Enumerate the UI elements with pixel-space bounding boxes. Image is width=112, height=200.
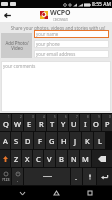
staticText: your email address (36, 51, 76, 57)
staticText: 1 (8, 115, 10, 119)
staticText: WCPO (50, 8, 71, 18)
button[interactable]: N (68, 150, 79, 167)
button[interactable]: E (24, 114, 35, 131)
staticText: Z (14, 154, 19, 164)
button[interactable]: R (36, 114, 46, 131)
button[interactable]: ?123 (0, 168, 11, 185)
staticText: H (61, 136, 67, 146)
staticText: your comments (3, 63, 36, 69)
button[interactable]: . (71, 168, 82, 185)
staticText: 7 (76, 115, 78, 119)
button[interactable]: Add Photo/ Video (1, 33, 32, 58)
staticText: . (75, 172, 78, 182)
button[interactable]: Back (0, 8, 14, 22)
staticText: 3 (32, 115, 34, 119)
staticText: V (47, 154, 52, 164)
button[interactable]: Space (24, 168, 70, 185)
staticText: ?123 (2, 177, 10, 182)
staticText: 2 (20, 115, 22, 119)
button[interactable]: C (33, 150, 43, 167)
staticText: 5 (54, 115, 56, 119)
staticText: U (71, 119, 77, 129)
button[interactable]: W (12, 114, 23, 131)
button[interactable]: Emoji (12, 168, 23, 185)
staticText: 9 (98, 115, 100, 119)
staticText: X (25, 154, 30, 164)
staticText: C (36, 154, 41, 164)
button[interactable]: P (102, 114, 112, 131)
staticText: , (17, 177, 19, 182)
staticText: Y (61, 119, 66, 129)
button[interactable]: H (58, 132, 69, 149)
staticText: 8 (87, 115, 89, 119)
button[interactable]: Back (10, 186, 34, 200)
staticText: 0 (109, 115, 111, 119)
staticText: O (93, 119, 99, 129)
staticText: J (74, 136, 77, 146)
staticText: W (14, 119, 21, 129)
button[interactable]: G (46, 132, 57, 149)
button[interactable]: Y (58, 114, 68, 131)
staticText: 8:55 AM (92, 1, 111, 8)
staticText: Add Photo/ Video (5, 40, 29, 52)
button[interactable]: A (0, 132, 10, 149)
button[interactable]: M (80, 150, 91, 167)
button[interactable]: F (34, 132, 45, 149)
button[interactable]: your email address (34, 50, 109, 58)
button[interactable]: Shift (0, 150, 10, 167)
staticText: L (98, 136, 102, 146)
button[interactable]: D (22, 132, 33, 149)
button[interactable]: K (82, 132, 93, 149)
button[interactable]: your phone (34, 40, 109, 48)
staticText: your phone (36, 41, 60, 47)
button[interactable]: J (70, 132, 81, 149)
button[interactable]: Enter (97, 168, 112, 185)
staticText: Q (3, 119, 9, 129)
button[interactable]: S (11, 132, 21, 149)
staticText: CINCINNATI (53, 18, 68, 22)
button[interactable]: your comments (1, 61, 111, 112)
staticText: K (85, 136, 90, 146)
staticText: N (71, 154, 77, 164)
staticText: 6 (65, 115, 67, 119)
staticText: G (49, 136, 55, 146)
staticText: 4 (43, 115, 45, 119)
button[interactable]: your name (34, 30, 109, 38)
button[interactable]: X (22, 150, 32, 167)
button[interactable]: V (44, 150, 55, 167)
button[interactable]: I (80, 114, 90, 131)
button[interactable]: Home (44, 186, 68, 200)
staticText: F (38, 136, 42, 146)
button[interactable]: L (94, 132, 105, 149)
staticText: R (39, 119, 44, 129)
staticText: I (84, 119, 87, 129)
button[interactable]: Backspace (92, 150, 112, 167)
staticText: A (3, 136, 8, 146)
button[interactable]: O (91, 114, 101, 131)
button[interactable]: U (69, 114, 79, 131)
staticText: P (105, 119, 110, 129)
staticText: T (50, 119, 55, 129)
staticText: M (82, 154, 89, 164)
staticText: Share your photos, videos and stories wi… (2, 25, 112, 31)
staticText: B (59, 154, 64, 164)
staticText: D (25, 136, 31, 146)
button[interactable]: Q (0, 114, 11, 131)
staticText: E (27, 119, 32, 129)
button[interactable]: Recents (78, 186, 102, 200)
staticText: S (14, 136, 19, 146)
button[interactable]: B (56, 150, 67, 167)
button[interactable]: Z (11, 150, 21, 167)
button[interactable]: T (47, 114, 57, 131)
staticText: your name (36, 31, 59, 37)
button[interactable]: Voice input (83, 168, 96, 185)
